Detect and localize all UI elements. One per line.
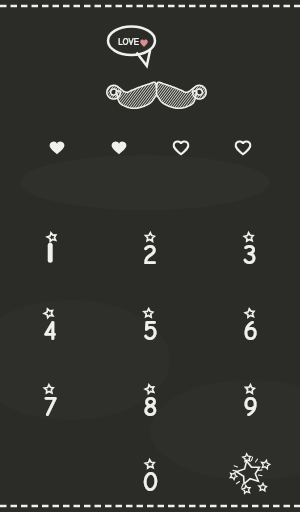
staticText: 0 xyxy=(142,466,159,498)
button[interactable]: 9 xyxy=(220,376,280,436)
button[interactable]: 6 xyxy=(220,300,280,360)
staticText: 2 xyxy=(143,239,157,271)
staticText: 3 xyxy=(243,239,257,271)
button[interactable] xyxy=(20,224,80,284)
button[interactable]: 4 xyxy=(20,300,80,360)
staticText: 4 xyxy=(43,315,57,347)
button[interactable]: 0 xyxy=(120,451,180,511)
button[interactable]: 7 xyxy=(20,376,80,436)
staticText: 7 xyxy=(44,391,57,423)
button[interactable]: Delete xyxy=(221,445,277,501)
staticText: 5 xyxy=(143,315,158,347)
button[interactable]: 8 xyxy=(120,376,180,436)
button[interactable]: 2 xyxy=(120,224,180,284)
button[interactable]: 3 xyxy=(220,224,280,284)
staticText: 9 xyxy=(243,391,258,423)
staticText: 6 xyxy=(243,315,258,347)
button[interactable]: 5 xyxy=(120,300,180,360)
staticText: LOVE xyxy=(118,36,140,47)
staticText: 8 xyxy=(143,391,158,423)
